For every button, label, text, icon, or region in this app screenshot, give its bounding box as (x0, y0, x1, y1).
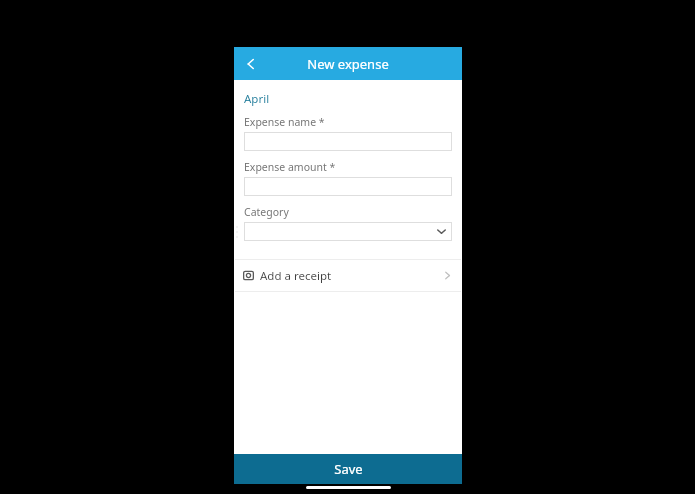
staticText: Add a receipt (260, 268, 332, 284)
button[interactable]: Save (234, 454, 462, 484)
button[interactable]: Text input field (244, 132, 452, 151)
staticText: New expense (307, 55, 389, 73)
staticText: April (244, 91, 270, 107)
staticText: Category (244, 205, 289, 219)
button[interactable]: Add a receipt (234, 260, 462, 291)
staticText: Expense amount * (244, 160, 336, 174)
staticText: Save (334, 460, 363, 478)
button[interactable]: Category dropdown (244, 222, 452, 241)
button[interactable]: Text input field (244, 177, 452, 196)
staticText: Expense name * (244, 115, 325, 129)
button[interactable]: Back (234, 47, 267, 80)
